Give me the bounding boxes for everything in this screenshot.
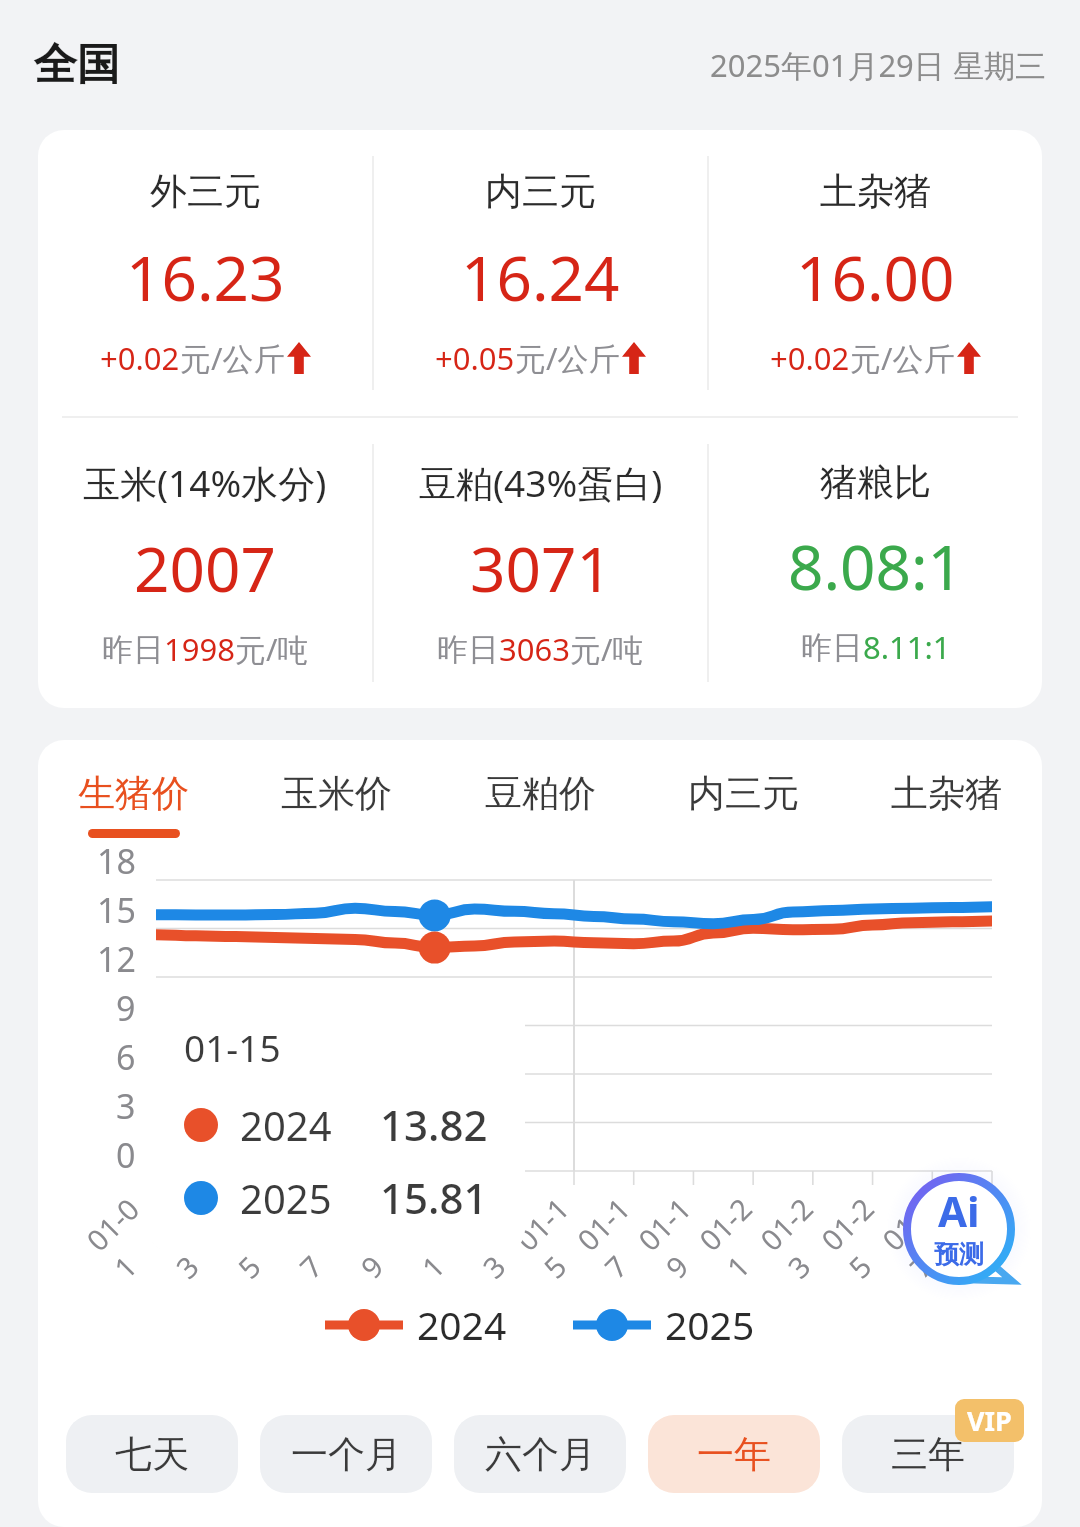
staticText: +0.02 bbox=[770, 337, 850, 379]
button[interactable]: 一个月 bbox=[260, 1415, 432, 1493]
staticText: 豆粕(43%蛋白) bbox=[419, 457, 663, 508]
staticText: 01-19 bbox=[629, 1188, 728, 1286]
button[interactable]: 内三元 bbox=[686, 770, 801, 838]
staticText: 一个月 bbox=[291, 1431, 402, 1478]
staticText: +0.02 bbox=[100, 337, 180, 379]
staticText: 01-17 bbox=[568, 1188, 667, 1286]
staticText: 生猪价 bbox=[78, 770, 189, 817]
button[interactable]: 2025 bbox=[573, 1298, 755, 1351]
staticText: 01-23 bbox=[751, 1188, 850, 1286]
staticText: 2024 bbox=[417, 1298, 507, 1351]
staticText: 昨日 bbox=[437, 630, 499, 669]
staticText: 七天 bbox=[115, 1431, 189, 1478]
staticText: 昨日 bbox=[801, 628, 863, 667]
staticText: VIP bbox=[967, 1402, 1012, 1439]
staticText: +0.05 bbox=[435, 337, 515, 379]
button[interactable]: AI 预测 bbox=[900, 1170, 1018, 1288]
staticText: 内三元 bbox=[485, 168, 596, 215]
staticText: 3063 bbox=[499, 628, 570, 670]
button[interactable]: 生猪价 bbox=[76, 770, 191, 838]
staticText: 豆粕价 bbox=[485, 770, 596, 817]
staticText: 18 bbox=[97, 838, 136, 884]
staticText: 外三元 bbox=[150, 168, 261, 215]
staticText: 01-05 bbox=[201, 1187, 300, 1286]
staticText: 猪粮比 bbox=[820, 459, 931, 506]
staticText: 01-27 bbox=[873, 1188, 972, 1286]
staticText: 6 bbox=[116, 1034, 136, 1080]
staticText: 元/吨 bbox=[570, 628, 644, 670]
staticText: 01-21 bbox=[690, 1188, 789, 1286]
button[interactable]: 豆粕价 bbox=[483, 770, 598, 838]
staticText: 16.24 bbox=[461, 235, 620, 319]
staticText: 8.11:1 bbox=[863, 626, 951, 668]
button[interactable]: 豆粕(43%蛋白) bbox=[374, 418, 707, 708]
staticText: 15.81 bbox=[380, 1169, 488, 1226]
staticText: 01-09 bbox=[324, 1188, 423, 1286]
button[interactable]: 三年 bbox=[842, 1415, 1014, 1493]
button[interactable]: 内三元 bbox=[374, 130, 707, 416]
staticText: 玉米价 bbox=[281, 770, 392, 817]
button[interactable]: 2024 bbox=[325, 1298, 507, 1351]
staticText: 2025 bbox=[240, 1171, 332, 1225]
staticText: 01-25 bbox=[812, 1188, 911, 1286]
staticText: 01-29 bbox=[934, 1188, 1033, 1286]
staticText: 全国 bbox=[34, 38, 120, 92]
staticText: 2025 bbox=[665, 1298, 755, 1351]
button[interactable]: 一年 bbox=[648, 1415, 820, 1493]
staticText: 01-15 bbox=[184, 1022, 281, 1072]
staticText: 01-01 bbox=[77, 1187, 176, 1286]
staticText: 2007 bbox=[134, 526, 276, 610]
staticText: 15 bbox=[97, 887, 136, 933]
staticText: 12 bbox=[97, 936, 136, 982]
staticText: 01-11 bbox=[385, 1188, 484, 1286]
staticText: 8.08:1 bbox=[788, 524, 964, 608]
staticText: 01-15 bbox=[507, 1188, 606, 1286]
staticText: 9 bbox=[116, 985, 136, 1031]
staticText: 三年 bbox=[891, 1431, 965, 1478]
staticText: 0 bbox=[116, 1132, 136, 1178]
staticText: 土杂猪 bbox=[891, 770, 1002, 817]
button[interactable]: 玉米(14%水分) bbox=[38, 418, 372, 708]
staticText: 昨日 bbox=[102, 630, 164, 669]
staticText: 土杂猪 bbox=[820, 168, 931, 215]
button[interactable]: 七天 bbox=[66, 1415, 238, 1493]
button[interactable]: 猪粮比 bbox=[709, 418, 1042, 708]
staticText: 01-03 bbox=[139, 1187, 238, 1286]
staticText: 2024 bbox=[240, 1098, 332, 1152]
staticText: 内三元 bbox=[688, 770, 799, 817]
staticText: 元/公斤 bbox=[850, 337, 955, 379]
staticText: 01-07 bbox=[263, 1188, 362, 1286]
staticText: 01-13 bbox=[446, 1188, 545, 1286]
staticText: 预测 bbox=[934, 1239, 984, 1270]
staticText: Ai bbox=[938, 1182, 980, 1239]
staticText: 16.23 bbox=[126, 235, 285, 319]
staticText: 一年 bbox=[697, 1431, 771, 1478]
staticText: 2025年01月29日 星期三 bbox=[710, 44, 1046, 86]
button[interactable]: 土杂猪 bbox=[889, 770, 1004, 838]
staticText: 玉米(14%水分) bbox=[83, 457, 327, 508]
staticText: 13.82 bbox=[380, 1096, 488, 1153]
staticText: 六个月 bbox=[485, 1431, 596, 1478]
staticText: 3071 bbox=[470, 526, 612, 610]
button[interactable]: 六个月 bbox=[454, 1415, 626, 1493]
button[interactable]: 土杂猪 bbox=[709, 130, 1042, 416]
staticText: 元/吨 bbox=[235, 628, 309, 670]
staticText: 3 bbox=[116, 1083, 136, 1129]
staticText: 元/公斤 bbox=[180, 337, 285, 379]
button[interactable]: 外三元 bbox=[38, 130, 372, 416]
button[interactable]: 玉米价 bbox=[279, 770, 394, 838]
staticText: 元/公斤 bbox=[515, 337, 620, 379]
staticText: 16.00 bbox=[796, 235, 955, 319]
staticText: 1998 bbox=[164, 628, 235, 670]
